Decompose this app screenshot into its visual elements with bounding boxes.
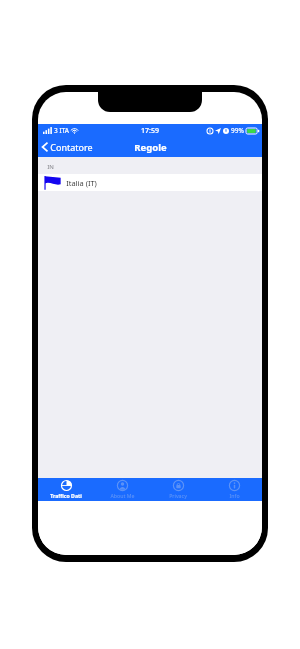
staticText: 3 ITA <box>54 126 69 135</box>
staticText: 17:59 <box>141 126 159 136</box>
button[interactable]: Traffico Dati <box>38 478 94 501</box>
button[interactable]: Contatore <box>38 137 99 157</box>
staticText: Regole <box>134 141 167 154</box>
staticText: Contatore <box>50 141 93 153</box>
staticText: Italia (IT) <box>66 178 97 188</box>
button[interactable]: Info <box>206 478 262 501</box>
staticText: Traffico Dati <box>50 492 82 499</box>
staticText: Privacy <box>169 492 187 499</box>
button[interactable]: About Me <box>94 478 150 501</box>
button[interactable]: Italia (IT) <box>38 174 262 191</box>
staticText: About Me <box>110 492 135 499</box>
staticText: Info <box>229 492 240 499</box>
button[interactable]: Privacy <box>150 478 206 501</box>
staticText: IN <box>47 163 54 171</box>
staticText: 99% <box>231 126 244 135</box>
